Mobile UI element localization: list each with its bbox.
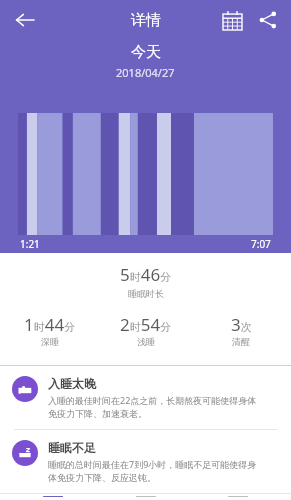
staticText: 浅睡 [137, 336, 155, 347]
button[interactable]: 1 [13, 493, 93, 500]
staticText: 1时44分 [24, 313, 76, 336]
staticText: 睡眠的总时间最佳在7到9小时，睡眠不足可能使得身 体免疫力下降、反应迟钝。 [48, 458, 257, 483]
staticText: 今天 [131, 43, 161, 62]
staticText: 3次 [231, 313, 252, 336]
button[interactable]: 入睡太晚 [0, 366, 291, 429]
staticText: 详情 [131, 11, 161, 30]
staticText: 1:21 [20, 237, 40, 251]
button[interactable]: Calendar [217, 5, 247, 35]
button[interactable]: Share [253, 5, 283, 35]
button[interactable]: 睡眠不足 [0, 430, 291, 493]
staticText: 2时54分 [120, 313, 172, 336]
button[interactable]: 7 [106, 493, 186, 500]
staticText: 5时46分 [120, 263, 172, 286]
staticText: 睡眠不足 [48, 440, 96, 455]
staticText: 入睡太晚 [48, 376, 96, 391]
staticText: 入睡的最佳时间在22点之前，长期熬夜可能使得身体 免疫力下降、加速衰老。 [48, 394, 257, 419]
staticText: 7:07 [251, 237, 271, 251]
staticText: 清醒 [232, 336, 250, 347]
staticText: 深睡 [41, 336, 59, 347]
staticText: 2018/04/27 [116, 65, 175, 80]
button[interactable]: Back [8, 3, 42, 37]
button[interactable]: 30 [198, 493, 278, 500]
staticText: 睡眠时长 [128, 288, 164, 299]
